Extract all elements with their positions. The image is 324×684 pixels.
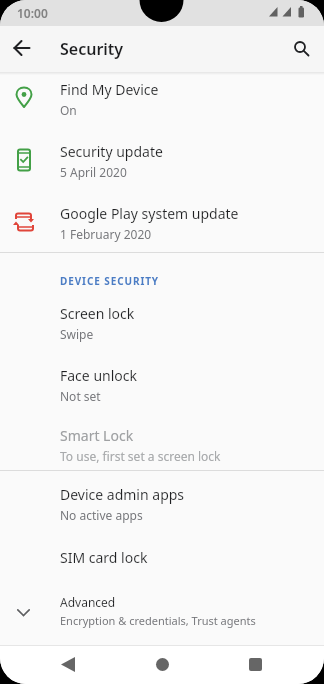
staticText: Face unlock: [60, 366, 137, 385]
button[interactable]: [233, 645, 277, 684]
staticText: Google Play system update: [60, 204, 239, 223]
button[interactable]: Device admin apps: [0, 472, 324, 534]
button[interactable]: [280, 27, 324, 71]
button[interactable]: Security update: [0, 134, 324, 196]
staticText: Swipe: [60, 326, 94, 342]
button[interactable]: Screen lock: [0, 296, 324, 358]
staticText: 10:00: [17, 5, 48, 21]
button[interactable]: [140, 645, 184, 684]
staticText: Security: [60, 38, 124, 60]
button[interactable]: [46, 645, 90, 684]
staticText: Screen lock: [60, 304, 135, 323]
staticText: To use, first set a screen lock: [60, 448, 221, 464]
staticText: 5 April 2020: [60, 164, 127, 180]
staticText: Advanced: [60, 594, 116, 610]
staticText: Smart Lock: [60, 426, 134, 445]
button[interactable]: Advanced: [0, 590, 324, 645]
staticText: DEVICE SECURITY: [60, 274, 159, 288]
staticText: Security update: [60, 142, 163, 161]
staticText: Find My Device: [60, 80, 159, 99]
button[interactable]: [0, 26, 44, 70]
button[interactable]: Smart Lock: [0, 420, 324, 470]
staticText: Not set: [60, 388, 101, 404]
staticText: 1 February 2020: [60, 226, 152, 242]
staticText: On: [60, 102, 77, 118]
button[interactable]: SIM card lock: [0, 534, 324, 596]
staticText: No active apps: [60, 507, 143, 523]
button[interactable]: Google Play system update: [0, 196, 324, 252]
staticText: Encryption & credentials, Trust agents: [60, 613, 256, 628]
button[interactable]: Face unlock: [0, 358, 324, 420]
staticText: SIM card lock: [60, 548, 148, 567]
staticText: Device admin apps: [60, 485, 185, 504]
button[interactable]: Find My Device: [0, 72, 324, 134]
